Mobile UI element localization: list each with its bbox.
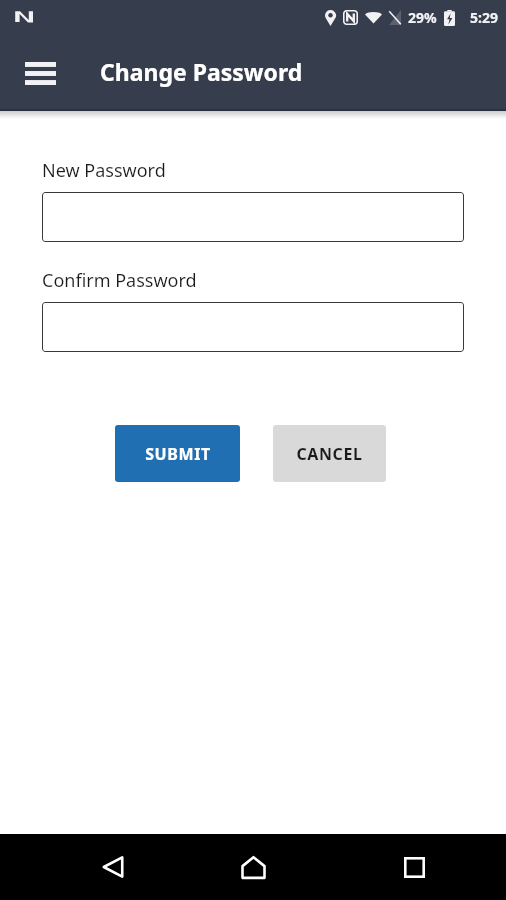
button[interactable]: CANCEL <box>273 425 386 482</box>
staticText: CANCEL <box>296 443 363 465</box>
button[interactable]: Password input field <box>42 192 464 242</box>
button[interactable]: Back <box>85 839 141 895</box>
staticText: SUBMIT <box>145 443 211 465</box>
button[interactable]: Recent apps <box>386 839 442 895</box>
button[interactable]: Home <box>225 839 281 895</box>
staticText: 29% <box>408 8 437 27</box>
staticText: Change Password <box>100 56 303 87</box>
staticText: 5:29 <box>470 8 498 27</box>
button[interactable]: Open navigation menu <box>12 45 68 101</box>
button[interactable]: SUBMIT <box>115 425 240 482</box>
staticText: Confirm Password <box>42 268 197 293</box>
button[interactable]: Password input field <box>42 302 464 352</box>
staticText: New Password <box>42 158 166 183</box>
